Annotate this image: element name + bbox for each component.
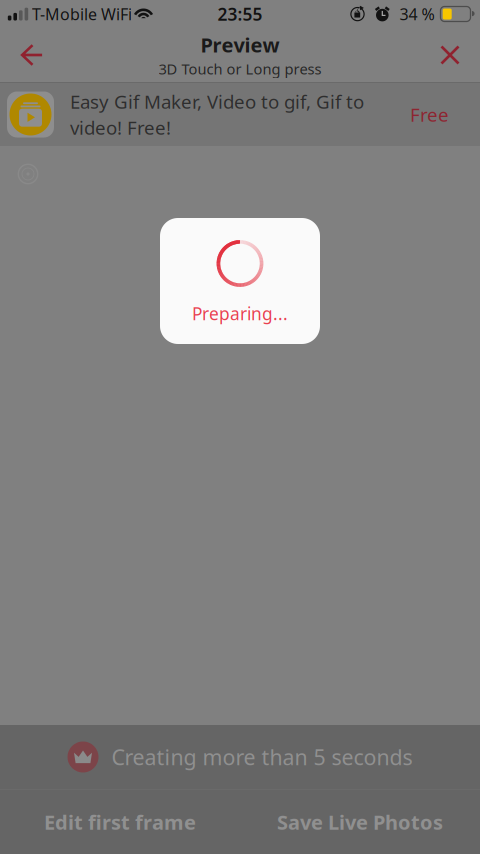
button[interactable]: Back xyxy=(5,28,59,82)
button[interactable]: Save Live Photos xyxy=(240,790,480,854)
staticText: Preview xyxy=(200,31,279,58)
staticText: Creating more than 5 seconds xyxy=(111,743,412,771)
button[interactable]: Edit first frame xyxy=(0,790,240,854)
button[interactable]: Close xyxy=(423,28,477,82)
staticText: Save Live Photos xyxy=(277,809,443,835)
staticText: 34 % xyxy=(399,3,434,25)
staticText: Easy Gif Maker, Video to gif, Gif to xyxy=(70,89,364,114)
staticText: T-Mobile WiFi xyxy=(32,3,132,25)
button[interactable]: Easy Gif Maker, Video to gif, Gif to xyxy=(0,83,480,146)
staticText: 23:55 xyxy=(217,2,262,25)
staticText: Preparing... xyxy=(192,302,288,325)
staticText: Free xyxy=(410,102,449,127)
staticText: video! Free! xyxy=(70,115,171,140)
button[interactable]: Creating more than 5 seconds xyxy=(0,725,480,789)
staticText: 3D Touch or Long press xyxy=(158,59,321,78)
staticText: Edit first frame xyxy=(44,809,196,835)
